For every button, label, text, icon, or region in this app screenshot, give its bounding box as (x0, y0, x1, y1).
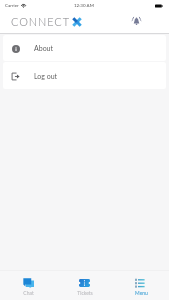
staticText: About (34, 44, 54, 52)
staticText: Tickets (77, 290, 93, 296)
staticText: Log out (34, 72, 58, 80)
button[interactable]: Chat (0, 275, 57, 296)
button[interactable]: Menu (113, 275, 169, 296)
staticText: Carrier (5, 3, 19, 8)
staticText: CONNECT (11, 15, 70, 28)
button[interactable]: Log out (3, 62, 166, 89)
button[interactable]: About (3, 35, 166, 61)
staticText: 12:30 AM (74, 3, 94, 8)
staticText: Menu (135, 290, 148, 296)
button[interactable]: Notifications (131, 15, 141, 25)
staticText: Chat (23, 290, 34, 296)
button[interactable]: Tickets (57, 275, 113, 296)
